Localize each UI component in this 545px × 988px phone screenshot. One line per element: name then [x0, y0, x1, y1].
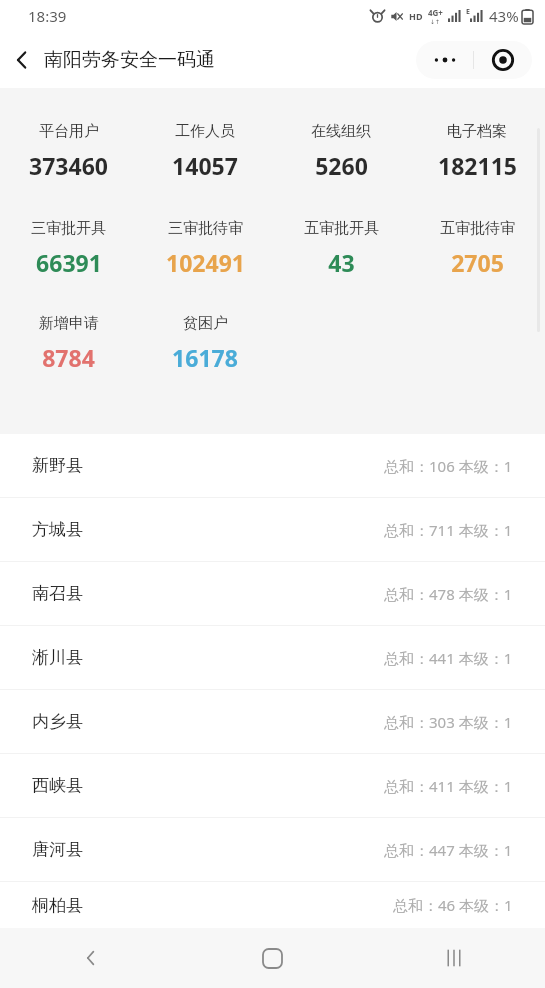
- staticText: 贫困户: [183, 314, 228, 333]
- button[interactable]: 淅川县: [0, 626, 545, 689]
- staticText: 方城县: [32, 519, 83, 540]
- staticText: 总和：303 本级：1: [384, 712, 513, 732]
- staticText: 内乡县: [32, 711, 83, 732]
- staticText: 14057: [172, 150, 238, 181]
- staticText: ↓↑: [430, 18, 441, 25]
- staticText: 西峡县: [32, 775, 83, 796]
- staticText: 43: [328, 247, 355, 278]
- button[interactable]: Home: [181, 928, 363, 988]
- staticText: 唐河县: [32, 839, 83, 860]
- button[interactable]: 内乡县: [0, 690, 545, 753]
- staticText: 三审批开具: [31, 219, 106, 238]
- staticText: 373460: [29, 150, 108, 181]
- button[interactable]: 唐河县: [0, 818, 545, 881]
- staticText: 在线组织: [311, 122, 371, 141]
- button[interactable]: 新野县: [0, 434, 545, 497]
- staticText: 电子档案: [447, 122, 507, 141]
- button[interactable]: 南召县: [0, 562, 545, 625]
- staticText: 五审批待审: [440, 219, 515, 238]
- staticText: 2705: [451, 247, 504, 278]
- staticText: 16178: [172, 342, 238, 373]
- staticText: 南阳劳务安全一码通: [44, 48, 215, 72]
- button[interactable]: 西峡县: [0, 754, 545, 817]
- staticText: HD: [409, 10, 423, 22]
- button[interactable]: More options: [416, 41, 473, 79]
- staticText: 总和：478 本级：1: [384, 584, 513, 604]
- staticText: 总和：411 本级：1: [384, 776, 513, 796]
- button[interactable]: 桐柏县: [0, 882, 545, 928]
- staticText: 8784: [42, 342, 95, 373]
- staticText: 淅川县: [32, 647, 83, 668]
- staticText: 43%: [489, 6, 519, 26]
- staticText: E: [466, 7, 470, 17]
- staticText: 102491: [166, 247, 245, 278]
- staticText: 新野县: [32, 455, 83, 476]
- button[interactable]: Back: [0, 928, 181, 988]
- staticText: 新增申请: [39, 314, 99, 333]
- staticText: 66391: [36, 247, 102, 278]
- staticText: 总和：46 本级：1: [393, 895, 513, 915]
- button[interactable]: Recent apps: [363, 928, 545, 988]
- staticText: 三审批待审: [168, 219, 243, 238]
- staticText: 平台用户: [39, 122, 99, 141]
- button[interactable]: Back: [0, 38, 44, 82]
- staticText: 总和：711 本级：1: [384, 520, 513, 540]
- staticText: 4G+: [428, 7, 443, 18]
- staticText: 182115: [438, 150, 517, 181]
- button[interactable]: 方城县: [0, 498, 545, 561]
- staticText: 总和：447 本级：1: [384, 840, 513, 860]
- staticText: 总和：106 本级：1: [384, 456, 513, 476]
- staticText: 南召县: [32, 583, 83, 604]
- staticText: 5260: [315, 150, 368, 181]
- staticText: 桐柏县: [32, 895, 83, 916]
- staticText: 工作人员: [175, 122, 235, 141]
- staticText: 总和：441 本级：1: [384, 648, 513, 668]
- staticText: 五审批开具: [304, 219, 379, 238]
- staticText: 18:39: [28, 6, 67, 26]
- button[interactable]: Close: [474, 41, 532, 79]
